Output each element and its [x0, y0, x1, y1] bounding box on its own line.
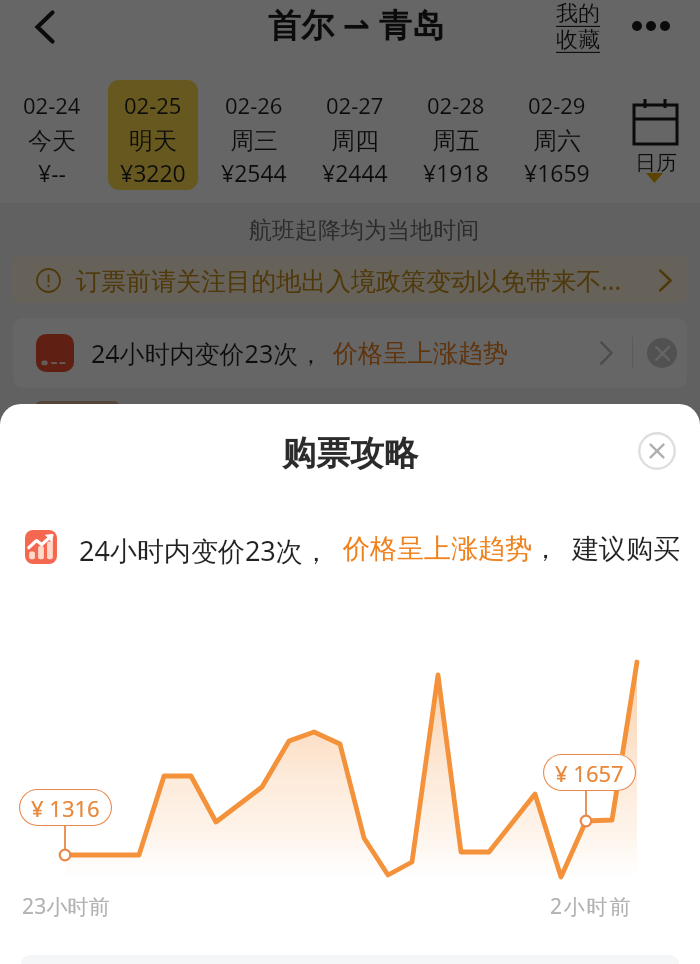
staticText: ¥ 1657	[555, 758, 624, 788]
button[interactable]: 02-28	[411, 80, 501, 190]
staticText: 02-27	[326, 90, 384, 120]
staticText: 明天	[129, 126, 177, 156]
staticText: 今天	[28, 126, 76, 156]
staticText: ，	[532, 532, 559, 566]
staticText: ¥ 1316	[31, 793, 100, 823]
staticText: 周五	[432, 126, 480, 156]
button[interactable]: More options	[617, 0, 685, 52]
button[interactable]: Dismiss	[647, 338, 677, 368]
staticText: ¥2544	[221, 157, 287, 188]
staticText: 收藏	[556, 26, 600, 54]
button[interactable]: 24小时内变价23次，	[13, 318, 687, 388]
staticText: 02-29	[528, 90, 586, 120]
staticText: 价格呈上涨趋势	[333, 338, 508, 369]
staticText: 日历	[635, 150, 677, 176]
staticText: 周三	[230, 126, 278, 156]
button[interactable]: Back	[21, 3, 69, 51]
button[interactable]: 02-24	[7, 80, 97, 190]
staticText: ¥2444	[322, 157, 388, 188]
staticText: 24小时内变价23次，	[91, 336, 324, 370]
staticText: 建议购买	[572, 532, 680, 566]
staticText: 02-24	[23, 90, 81, 120]
staticText: ¥--	[38, 157, 66, 188]
button[interactable]	[35, 401, 120, 409]
staticText: 02-25	[124, 90, 182, 120]
staticText: 价格呈上涨趋势	[343, 532, 532, 566]
staticText: 02-26	[225, 90, 283, 120]
staticText: ¥3220	[120, 157, 186, 188]
button[interactable]: 02-27	[310, 80, 400, 190]
staticText: 首尔 ⇀ 青岛	[268, 2, 445, 47]
staticText: 24小时内变价23次，	[79, 532, 330, 569]
button[interactable]: Close	[632, 426, 682, 476]
staticText: 订票前请关注目的地出入境政策变动以免带来不...	[76, 263, 622, 297]
staticText: 2小时前	[550, 892, 633, 921]
button[interactable]: 02-29	[512, 80, 602, 190]
staticText: 购票攻略	[282, 432, 418, 475]
button[interactable]: 订票前请关注目的地出入境政策变动以免带来不...	[11, 256, 688, 303]
staticText: 周四	[331, 126, 379, 156]
staticText: 23小时前	[22, 892, 111, 921]
staticText: ¥1918	[423, 157, 489, 188]
staticText: 02-28	[427, 90, 485, 120]
button[interactable]: 02-25	[108, 80, 198, 190]
button[interactable]: 日历	[612, 80, 700, 192]
button[interactable]: 02-26	[209, 80, 299, 190]
staticText: 我的	[556, 0, 600, 28]
staticText: 航班起降均为当地时间	[14, 216, 700, 245]
staticText: ¥1659	[524, 157, 590, 188]
button[interactable]: 我的	[548, 0, 608, 58]
staticText: 周六	[533, 126, 581, 156]
